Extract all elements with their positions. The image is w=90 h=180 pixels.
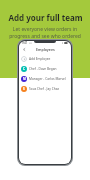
staticText: Manager - Carlos Marvel bbox=[29, 77, 66, 81]
staticText: C bbox=[23, 67, 25, 71]
staticText: Let everyone view orders in progress and… bbox=[5, 26, 85, 46]
staticText: Add your full team bbox=[8, 12, 83, 23]
staticText: Employees bbox=[36, 47, 55, 52]
staticText: Add Employee bbox=[29, 57, 51, 61]
staticText: Sous Chef - Jay Chaz bbox=[29, 87, 59, 91]
staticText: M bbox=[23, 77, 26, 81]
staticText: 9:41 bbox=[22, 41, 28, 45]
button[interactable]: S bbox=[19, 84, 71, 94]
button[interactable]: Back bbox=[21, 46, 27, 52]
button[interactable]: Add Employee bbox=[19, 54, 71, 64]
button[interactable]: C bbox=[19, 64, 71, 74]
staticText: Chef - Dave Began bbox=[29, 67, 57, 71]
button[interactable]: M bbox=[19, 74, 71, 84]
staticText: S bbox=[23, 87, 25, 91]
